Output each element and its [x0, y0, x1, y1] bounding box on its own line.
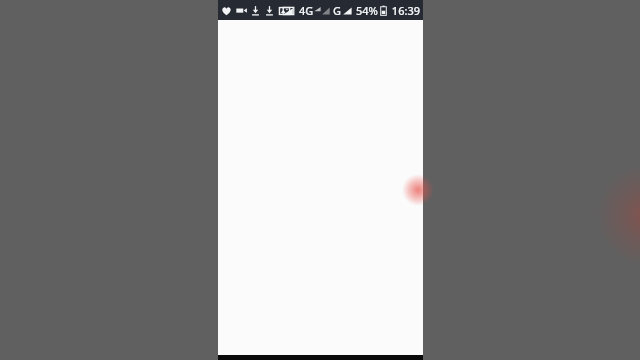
staticText: 54% [356, 3, 378, 18]
staticText: G [333, 3, 341, 18]
staticText: 16:39 [391, 3, 420, 18]
staticText: 4G [299, 3, 314, 18]
button[interactable]: System status [283, 3, 420, 18]
button[interactable]: Notifications [221, 5, 290, 16]
button[interactable] [218, 20, 423, 355]
